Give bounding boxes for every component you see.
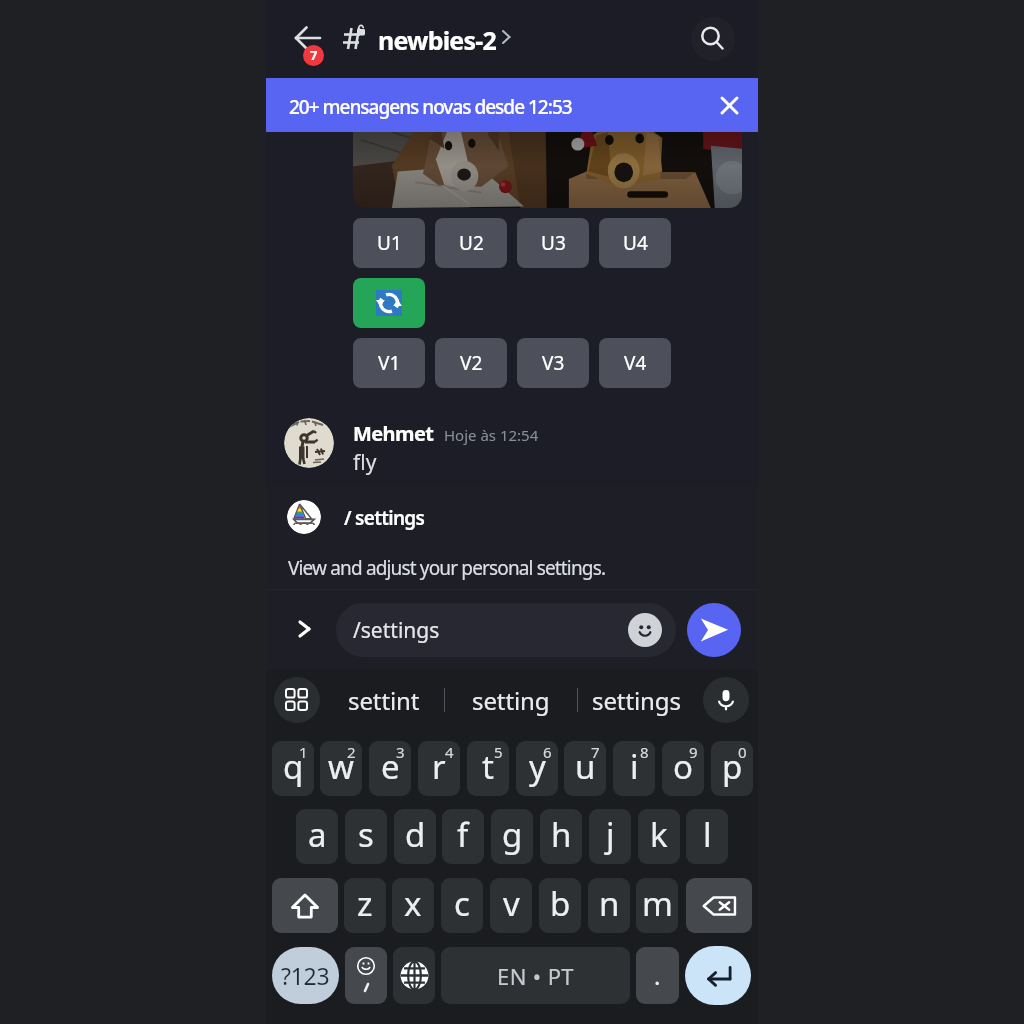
button[interactable]: settint: [324, 670, 444, 730]
staticText: setting: [472, 684, 550, 717]
button[interactable]: z: [344, 878, 386, 933]
staticText: l: [703, 812, 712, 857]
button[interactable]: .: [636, 947, 679, 1004]
button[interactable]: Re-roll: [353, 278, 425, 328]
button[interactable]: Emoji: [628, 613, 662, 647]
button[interactable]: Emoji: [345, 947, 387, 1004]
staticText: View and adjust your personal settings.: [288, 555, 606, 581]
staticText: z: [357, 881, 373, 926]
staticText: x: [404, 881, 422, 926]
staticText: j: [606, 812, 615, 857]
staticText: 0: [738, 742, 747, 762]
button[interactable]: Backspace: [686, 878, 752, 933]
button[interactable]: p: [711, 741, 753, 796]
staticText: Hoje às 12:54: [444, 425, 539, 445]
button[interactable]: EN • PT: [441, 947, 630, 1004]
button[interactable]: Shift: [272, 878, 338, 933]
staticText: 6: [543, 742, 552, 762]
staticText: Mehmet: [353, 420, 434, 447]
staticText: ?123: [281, 960, 330, 991]
button[interactable]: w: [320, 741, 362, 796]
button[interactable]: setting: [451, 670, 571, 730]
staticText: /settings: [353, 616, 440, 645]
button[interactable]: U3: [517, 218, 589, 268]
button[interactable]: Change language: [393, 947, 435, 1004]
button[interactable]: U2: [435, 218, 507, 268]
button[interactable]: m: [636, 878, 678, 933]
staticText: U2: [459, 230, 484, 256]
button[interactable]: Send: [687, 603, 741, 657]
button[interactable]: Toolbar: [274, 677, 320, 723]
button[interactable]: d: [394, 809, 436, 864]
staticText: a: [308, 812, 327, 857]
staticText: s: [358, 812, 374, 857]
button[interactable]: Commands: [284, 608, 326, 650]
button[interactable]: x: [392, 878, 434, 933]
button[interactable]: V1: [353, 338, 425, 388]
staticText: newbies-2: [378, 23, 496, 57]
staticText: t: [482, 744, 494, 789]
staticText: e: [381, 744, 400, 789]
staticText: 9: [689, 742, 698, 762]
staticText: V4: [624, 350, 647, 376]
staticText: k: [650, 812, 668, 857]
button[interactable]: V4: [599, 338, 671, 388]
staticText: o: [673, 744, 693, 789]
button[interactable]: Enter: [685, 946, 751, 1005]
button[interactable]: i: [613, 741, 655, 796]
staticText: 1: [299, 742, 308, 762]
button[interactable]: t: [467, 741, 509, 796]
staticText: 4: [445, 742, 454, 762]
button[interactable]: q: [272, 741, 314, 796]
button[interactable]: b: [539, 878, 581, 933]
staticText: fly: [353, 448, 377, 477]
staticText: p: [722, 744, 743, 789]
button[interactable]: Back: [284, 14, 332, 62]
staticText: / settings: [344, 505, 425, 531]
staticText: n: [599, 881, 620, 926]
button[interactable]: U1: [353, 218, 425, 268]
staticText: m: [642, 881, 673, 926]
staticText: u: [575, 744, 596, 789]
staticText: 8: [640, 742, 649, 762]
button[interactable]: settings: [576, 670, 696, 730]
staticText: V3: [542, 350, 565, 376]
button[interactable]: U4: [599, 218, 671, 268]
button[interactable]: c: [441, 878, 483, 933]
button[interactable]: v: [490, 878, 532, 933]
button[interactable]: j: [589, 809, 631, 864]
staticText: V1: [378, 350, 401, 376]
button[interactable]: n: [588, 878, 630, 933]
button[interactable]: o: [662, 741, 704, 796]
staticText: w: [328, 744, 354, 789]
staticText: .: [654, 959, 661, 992]
staticText: V2: [460, 350, 483, 376]
button[interactable]: Search: [691, 17, 735, 61]
button[interactable]: u: [564, 741, 606, 796]
button[interactable]: k: [638, 809, 680, 864]
button[interactable]: ?123: [272, 947, 339, 1004]
button[interactable]: V2: [435, 338, 507, 388]
staticText: 7: [591, 742, 600, 762]
staticText: settings: [592, 684, 681, 717]
staticText: settint: [348, 684, 420, 717]
button[interactable]: Voice input: [703, 677, 749, 723]
button[interactable]: r: [418, 741, 460, 796]
button[interactable]: h: [540, 809, 582, 864]
button[interactable]: V3: [517, 338, 589, 388]
button[interactable]: s: [345, 809, 387, 864]
staticText: r: [432, 744, 446, 789]
staticText: 20+ mensagens novas desde 12:53: [289, 94, 572, 120]
staticText: U4: [623, 230, 648, 256]
button[interactable]: /settings: [336, 603, 676, 657]
button[interactable]: e: [369, 741, 411, 796]
button[interactable]: f: [442, 809, 484, 864]
button[interactable]: a: [296, 809, 338, 864]
staticText: 3: [396, 742, 405, 762]
button[interactable]: g: [491, 809, 533, 864]
button[interactable]: Dismiss: [710, 86, 748, 124]
button[interactable]: y: [516, 741, 558, 796]
staticText: b: [550, 881, 571, 926]
staticText: EN • PT: [497, 961, 575, 991]
button[interactable]: l: [686, 809, 728, 864]
